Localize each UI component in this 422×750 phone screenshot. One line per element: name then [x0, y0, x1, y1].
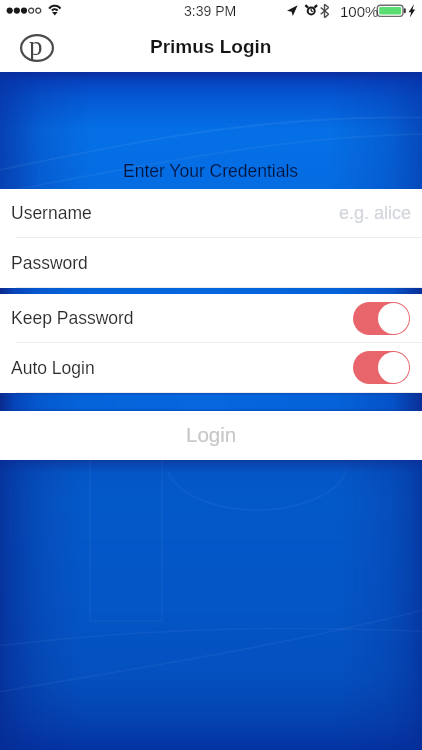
staticText: Primus Login	[150, 36, 272, 57]
button[interactable]: Login	[0, 411, 422, 460]
staticText: 100%	[340, 3, 379, 20]
staticText: Password	[11, 253, 88, 273]
staticText: Keep Password	[11, 308, 353, 328]
button[interactable]: Username	[0, 189, 422, 237]
button[interactable]: Primus logo	[17, 33, 57, 67]
button[interactable]: Auto Login	[0, 343, 422, 392]
staticText: 3:39 PM	[184, 3, 237, 19]
button[interactable]: Keep Password	[0, 294, 422, 342]
staticText: Auto Login	[11, 358, 353, 378]
button[interactable]: Password	[0, 238, 422, 287]
staticText: Username	[11, 203, 92, 223]
staticText: e.g. alice	[339, 203, 412, 223]
staticText: p	[29, 31, 43, 61]
staticText: Enter Your Credentials	[123, 161, 299, 181]
staticText: Login	[186, 423, 237, 446]
